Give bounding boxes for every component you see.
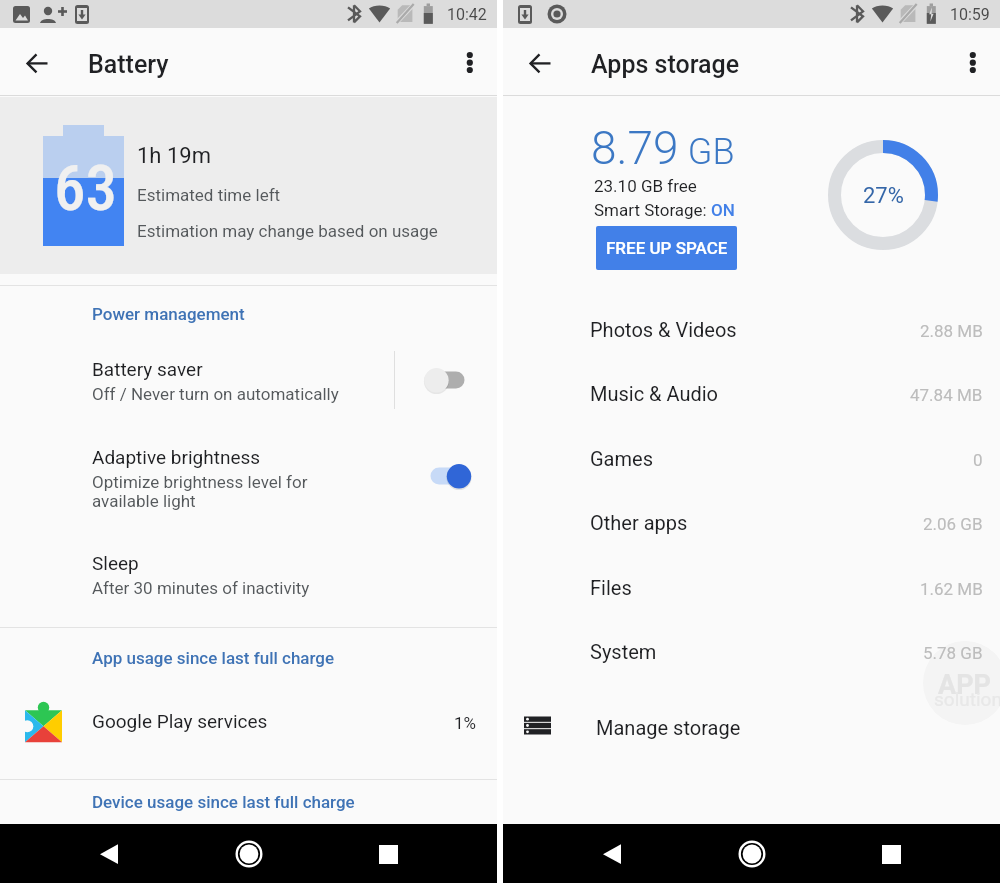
staticText: APP — [938, 669, 991, 701]
staticText: Optimize brightness level for available … — [92, 472, 308, 512]
staticText: Estimation may change based on usage — [137, 221, 438, 241]
button[interactable]: Back — [89, 834, 129, 874]
staticText: GB — [679, 131, 735, 173]
staticText: Sleep — [92, 552, 139, 574]
staticText: Battery saver — [92, 358, 203, 380]
button[interactable]: Other apps — [503, 498, 1000, 548]
staticText: 1% — [454, 713, 477, 733]
staticText: 0 — [973, 450, 983, 470]
button[interactable]: More options — [450, 42, 490, 82]
staticText: 23.10 GB free — [594, 176, 697, 196]
button[interactable]: Adaptive brightness — [0, 428, 497, 528]
staticText: 63 — [54, 152, 117, 226]
staticText: Google Play services — [92, 710, 268, 732]
staticText: solution — [934, 688, 1000, 710]
staticText: App usage since last full charge — [92, 648, 335, 668]
button[interactable]: Games — [503, 434, 1000, 484]
button[interactable]: Battery saver — [0, 340, 497, 420]
staticText: Manage storage — [596, 716, 741, 739]
button[interactable]: Photos & Videos — [503, 305, 1000, 355]
button[interactable]: Recents — [368, 834, 408, 874]
staticText: After 30 minutes of inactivity — [92, 578, 310, 598]
staticText: 10:59 — [950, 5, 990, 24]
staticText: Off / Never turn on automatically — [92, 384, 339, 404]
staticText: Battery — [88, 50, 169, 79]
staticText: 5.78 GB — [923, 643, 983, 663]
button[interactable]: Home — [227, 832, 271, 876]
button[interactable]: Music & Audio — [503, 369, 1000, 419]
staticText: FREE UP SPACE — [606, 238, 728, 258]
staticText: Apps storage — [591, 50, 740, 79]
button[interactable]: FREE UP SPACE — [596, 226, 737, 270]
button[interactable]: System — [503, 627, 1000, 677]
staticText: Games — [590, 447, 653, 470]
button[interactable]: Back — [592, 834, 632, 874]
button[interactable]: Back — [521, 45, 561, 85]
staticText: Music & Audio — [590, 382, 719, 405]
staticText: Device usage since last full charge — [92, 792, 355, 812]
button[interactable]: Google Play services — [0, 696, 497, 752]
staticText: 1.62 MB — [920, 579, 983, 599]
staticText: 1h 19m — [137, 143, 211, 169]
button[interactable]: Recents — [871, 834, 911, 874]
staticText: System — [590, 640, 657, 663]
staticText: Estimated time left — [137, 185, 281, 205]
button[interactable]: Manage storage — [503, 702, 1000, 758]
staticText: ON — [711, 200, 735, 220]
button[interactable]: Home — [730, 832, 774, 876]
staticText: Files — [590, 576, 632, 599]
staticText: Smart Storage: — [594, 200, 711, 220]
button[interactable]: More options — [953, 42, 993, 82]
button[interactable]: Back — [18, 45, 58, 85]
staticText: Adaptive brightness — [92, 446, 261, 468]
staticText: Power management — [92, 304, 245, 324]
staticText: Photos & Videos — [590, 318, 737, 341]
button[interactable]: Files — [503, 563, 1000, 613]
staticText: 8.79 — [591, 121, 679, 175]
staticText: 2.88 MB — [920, 321, 983, 341]
staticText: 47.84 MB — [910, 385, 983, 405]
staticText: Other apps — [590, 511, 688, 534]
button[interactable]: Sleep — [0, 534, 497, 614]
staticText: 10:42 — [447, 5, 487, 24]
staticText: 27% — [863, 183, 904, 209]
staticText: 2.06 GB — [923, 514, 983, 534]
